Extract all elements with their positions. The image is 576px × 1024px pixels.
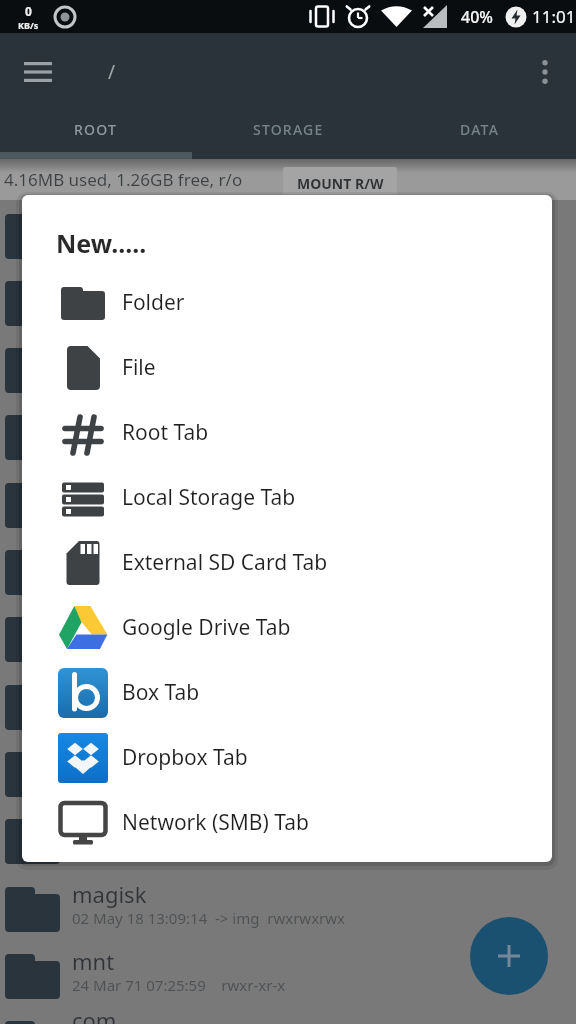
- staticText: File: [122, 353, 156, 382]
- button[interactable]: Local Storage Tab: [22, 465, 552, 530]
- staticText: 4.16MB used, 1.26GB free, r/o: [4, 168, 243, 191]
- staticText: 11:01: [532, 5, 576, 28]
- staticText: Box Tab: [122, 678, 200, 707]
- staticText: New.....: [56, 226, 147, 260]
- staticText: Local Storage Tab: [122, 483, 296, 512]
- button[interactable]: [12, 51, 64, 93]
- staticText: com: [72, 1005, 117, 1024]
- staticText: 02 May 18 13:09:14 -> img rwxrwxrwx: [72, 908, 346, 928]
- button[interactable]: STORAGE: [192, 107, 384, 152]
- button[interactable]: [524, 51, 566, 93]
- staticText: STORAGE: [253, 120, 324, 139]
- staticText: 0: [25, 3, 32, 19]
- staticText: Folder: [122, 288, 185, 317]
- staticText: Google Drive Tab: [122, 613, 291, 642]
- staticText: MOUNT R/W: [297, 174, 384, 193]
- staticText: ROOT: [74, 120, 118, 139]
- button[interactable]: MOUNT R/W: [283, 167, 397, 199]
- staticText: Root Tab: [122, 418, 209, 447]
- staticText: Dropbox Tab: [122, 743, 248, 772]
- staticText: /: [108, 59, 116, 85]
- staticText: Network (SMB) Tab: [122, 808, 309, 837]
- button[interactable]: Google Drive Tab: [22, 595, 552, 660]
- button[interactable]: [470, 917, 548, 995]
- staticText: 40%: [461, 6, 493, 28]
- button[interactable]: DATA: [384, 107, 576, 152]
- button[interactable]: External SD Card Tab: [22, 530, 552, 595]
- button[interactable]: ROOT: [0, 107, 192, 152]
- staticText: KB/s: [18, 19, 39, 31]
- button[interactable]: Dropbox Tab: [22, 725, 552, 790]
- button[interactable]: File: [22, 335, 552, 400]
- staticText: mnt: [72, 946, 115, 976]
- staticText: External SD Card Tab: [122, 548, 328, 577]
- button[interactable]: Folder: [22, 270, 552, 335]
- staticText: DATA: [460, 120, 500, 139]
- button[interactable]: Network (SMB) Tab: [22, 790, 552, 855]
- button[interactable]: Box Tab: [22, 660, 552, 725]
- staticText: 24 Mar 71 07:25:59 rwxr-xr-x: [72, 975, 286, 995]
- staticText: magisk: [72, 879, 147, 909]
- button[interactable]: Root Tab: [22, 400, 552, 465]
